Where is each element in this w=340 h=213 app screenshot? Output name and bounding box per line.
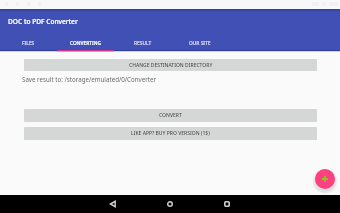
button[interactable]: CONVERTING xyxy=(57,36,114,51)
button[interactable]: FILES xyxy=(0,36,57,51)
button[interactable]: CONVERT xyxy=(24,109,317,122)
staticText: RESULT xyxy=(134,40,152,47)
staticText: Save result to: /storage/emulated/0/Conv… xyxy=(22,75,157,83)
button[interactable]: OUR SITE xyxy=(171,36,228,51)
staticText: DOC to PDF Converter xyxy=(8,17,78,26)
button[interactable]: Home xyxy=(161,195,179,213)
button[interactable]: RESULT xyxy=(114,36,171,51)
button[interactable]: CHANGE DESTINATION DIRECTORY xyxy=(24,59,317,71)
staticText: LIKE APP? BUY PRO VERSION (1$) xyxy=(131,130,210,137)
button[interactable]: Back xyxy=(104,195,122,213)
button[interactable]: Recent apps xyxy=(218,195,236,213)
staticText: OUR SITE xyxy=(189,40,211,47)
staticText: FILES xyxy=(22,40,35,47)
staticText: CONVERTING xyxy=(70,40,101,47)
button[interactable]: LIKE APP? BUY PRO VERSION (1$) xyxy=(24,127,317,140)
staticText: CONVERT xyxy=(159,112,182,119)
button[interactable]: Add xyxy=(315,169,335,189)
staticText: CHANGE DESTINATION DIRECTORY xyxy=(129,62,213,69)
